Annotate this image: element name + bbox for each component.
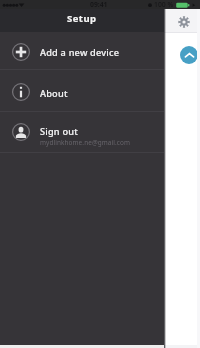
staticText: Setup bbox=[67, 12, 97, 25]
button[interactable]: Add a new device bbox=[0, 32, 164, 70]
staticText: 100 % bbox=[154, 0, 174, 9]
staticText: About bbox=[40, 87, 68, 100]
button[interactable]: About bbox=[0, 70, 164, 112]
button[interactable]: Scroll up bbox=[180, 46, 198, 64]
staticText: mydlinkhome.ne@gmail.com bbox=[40, 138, 131, 147]
button[interactable]: Settings bbox=[176, 14, 192, 30]
staticText: Add a new device bbox=[40, 46, 120, 59]
button[interactable]: Sign out bbox=[0, 112, 164, 152]
staticText: Sign out bbox=[40, 125, 78, 138]
staticText: 09:41 bbox=[90, 0, 108, 9]
